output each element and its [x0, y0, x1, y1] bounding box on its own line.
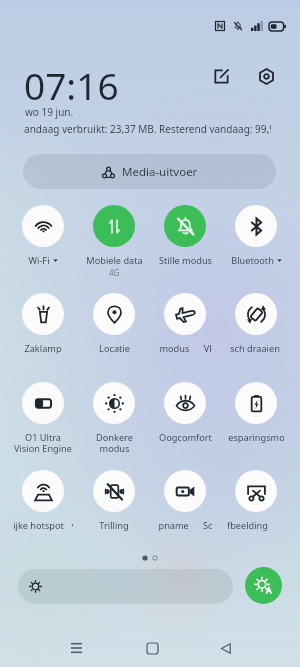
button[interactable]: Edit quick settings: [208, 63, 235, 90]
staticText: vandaag verbruikt: 23,37 MB. Resterend v…: [24, 122, 271, 136]
staticText: esparingsmo: [228, 431, 284, 444]
staticText: Zaklamp: [24, 342, 62, 355]
staticText: 4G: [109, 267, 120, 278]
staticText: wo 19 jun.: [25, 105, 74, 119]
staticText: Locatie: [99, 342, 130, 355]
staticText: Oogcomfort: [159, 431, 212, 444]
button[interactable]: ijke hotspot: [10, 470, 76, 546]
button[interactable]: Trilling: [81, 470, 147, 546]
button[interactable]: Stille modus: [152, 205, 218, 281]
staticText: Stille modus: [159, 254, 212, 267]
button[interactable]: Zaklamp: [10, 293, 76, 369]
button[interactable]: Bluetooth: [223, 205, 289, 281]
staticText: modus Vl: [159, 342, 212, 355]
button[interactable]: Home: [134, 630, 170, 666]
staticText: O1 Ultra Vision Engine: [14, 431, 72, 455]
button[interactable]: Settings: [252, 62, 280, 90]
button[interactable]: Auto brightness: [245, 567, 282, 604]
button[interactable]: Mobiele data: [81, 205, 147, 281]
staticText: Trilling: [99, 519, 129, 532]
staticText: pname Sc: [158, 519, 212, 532]
button[interactable]: Wi-Fi: [10, 205, 76, 281]
staticText: Media-uitvoer: [122, 164, 198, 180]
button[interactable]: sch draaien: [223, 293, 289, 369]
staticText: 07:16: [24, 60, 119, 110]
staticText: Bluetooth: [231, 254, 274, 267]
button[interactable]: Oogcomfort: [152, 382, 218, 458]
button[interactable]: modus Vl: [152, 293, 218, 369]
button[interactable]: Donkere modus: [81, 382, 147, 458]
button[interactable]: Brightness: [18, 569, 233, 604]
button[interactable]: Locatie: [81, 293, 147, 369]
button[interactable]: esparingsmo: [223, 382, 289, 458]
staticText: ijke hotspot: [13, 519, 64, 532]
button[interactable]: fbeelding: [223, 470, 289, 546]
staticText: fbeelding: [227, 519, 268, 532]
button[interactable]: Back: [208, 630, 244, 666]
staticText: Mobiele data: [86, 254, 143, 267]
button[interactable]: Recent apps: [58, 630, 94, 666]
staticText: Wi-Fi: [28, 254, 50, 267]
button[interactable]: Media-uitvoer: [23, 154, 276, 189]
button[interactable]: pname Sc: [152, 470, 218, 546]
staticText: sch draaien: [230, 342, 280, 355]
staticText: Donkere modus: [96, 431, 133, 455]
button[interactable]: O1 Ultra Vision Engine: [10, 382, 76, 458]
